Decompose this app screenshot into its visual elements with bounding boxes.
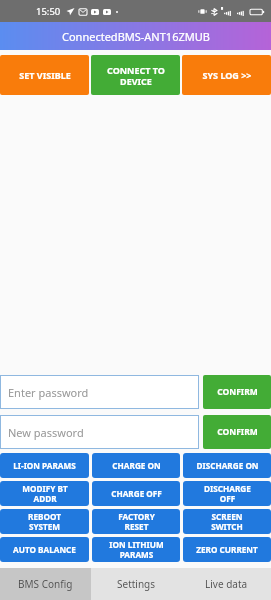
staticText: CHARGE ON [112,460,161,471]
button[interactable]: CHARGE OFF [92,481,180,506]
staticText: Live data [205,577,248,591]
button[interactable]: CONFIRM [203,375,271,409]
staticText: DISCHARGE OFF [204,483,251,504]
staticText: ConnectedBMS-ANT16ZMUB [62,29,210,44]
button[interactable]: DISCHARGE ON [183,453,271,478]
staticText: DISCHARGE ON [196,460,259,471]
staticText: SYS LOG >> [202,69,252,81]
button[interactable]: CONNECT TO DEVICE [91,55,180,95]
button[interactable]: MODIFY BT ADDR [0,481,89,506]
staticText: BMS Config [18,577,73,591]
staticText: Settings [117,577,156,591]
staticText: ION LITHIUM PARAMS [109,539,164,560]
button[interactable]: CONFIRM [203,415,271,449]
staticText: SET VISIBLE [19,69,71,81]
staticText: 15:50 [36,5,61,18]
staticText: CONFIRM [217,426,258,438]
button[interactable]: Settings [91,568,181,600]
staticText: Enter password [8,385,89,400]
staticText: FACTORY RESET [118,511,155,532]
staticText: CONFIRM [217,386,258,398]
staticText: LI-ION PARAMS [13,460,76,471]
button[interactable]: AUTO BALANCE [0,537,89,562]
staticText: CONNECT TO DEVICE [107,64,165,87]
button[interactable]: CHARGE ON [92,453,180,478]
button[interactable]: LI-ION PARAMS [0,453,89,478]
staticText: SCREEN SWITCH [211,511,243,532]
button[interactable]: DISCHARGE OFF [183,481,271,506]
button[interactable]: SYS LOG >> [182,55,271,95]
button[interactable]: Live data [181,568,271,600]
button[interactable]: ZERO CURRENT [183,537,271,562]
staticText: New password [8,425,84,440]
button[interactable]: ION LITHIUM PARAMS [92,537,180,562]
button[interactable]: REBOOT SYSTEM [0,509,89,534]
button[interactable]: SET VISIBLE [0,55,89,95]
button[interactable]: BMS Config [0,568,91,600]
staticText: ZERO CURRENT [196,544,258,555]
button[interactable]: New password [0,415,199,449]
button[interactable]: Enter password [0,375,199,409]
button[interactable]: FACTORY RESET [92,509,180,534]
button[interactable]: SCREEN SWITCH [183,509,271,534]
staticText: REBOOT SYSTEM [28,511,61,532]
staticText: MODIFY BT ADDR [22,483,68,504]
staticText: CHARGE OFF [111,488,162,499]
staticText: AUTO BALANCE [13,544,76,555]
